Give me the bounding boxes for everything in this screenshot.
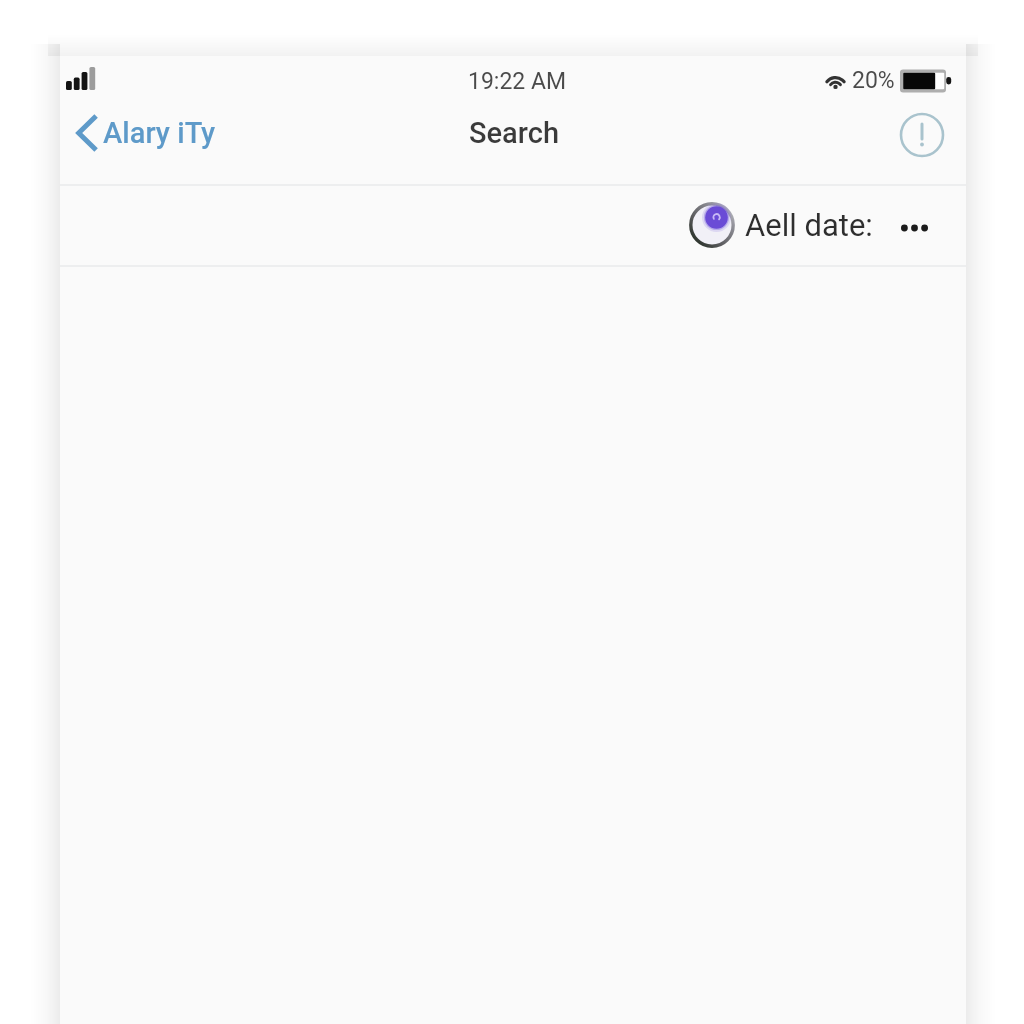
staticText: Search: [469, 116, 560, 150]
button[interactable]: Information: [894, 107, 950, 163]
staticText: Alary iTy: [103, 116, 216, 150]
button[interactable]: More options: [894, 205, 934, 245]
staticText: Aell date:: [745, 207, 873, 243]
staticText: 19:22 AM: [468, 68, 567, 95]
button[interactable]: Aell date:: [688, 201, 873, 249]
staticText: 20%: [852, 67, 895, 94]
button[interactable]: Alary iTy: [68, 105, 224, 161]
